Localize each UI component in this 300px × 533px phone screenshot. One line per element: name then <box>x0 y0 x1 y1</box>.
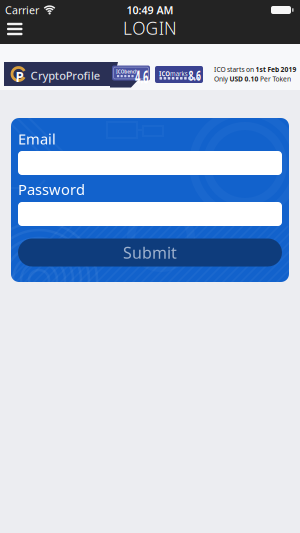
staticText: Carrier <box>5 3 39 17</box>
staticText: Email <box>18 129 56 148</box>
staticText: CryptoProfile <box>30 68 105 84</box>
button[interactable]: Email <box>18 151 282 175</box>
staticText: LOGIN <box>123 16 177 39</box>
staticText: ICOmarks <box>159 68 229 87</box>
button[interactable]: Submit <box>18 238 282 266</box>
staticText: Only USD 0.10 Per Token <box>214 74 300 92</box>
staticText: P <box>15 68 23 86</box>
staticText: ICO starts on 1st Feb 2019 <box>214 65 300 83</box>
button[interactable]: Password <box>18 202 282 226</box>
staticText: Password <box>18 179 85 199</box>
button[interactable]: Menu <box>0 18 30 40</box>
staticText: ICObench <box>116 68 167 82</box>
staticText: Submit <box>123 242 177 263</box>
staticText: 8.6 <box>188 65 223 97</box>
staticText: 4.6 <box>135 65 180 107</box>
staticText: 10:49 AM <box>126 3 173 17</box>
